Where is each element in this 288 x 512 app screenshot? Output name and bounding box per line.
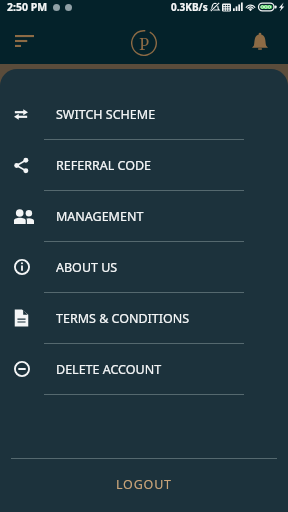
staticText: TERMS & CONDITIONS	[56, 310, 190, 327]
staticText: MANAGEMENT	[56, 208, 144, 225]
staticText: 2:50 PM	[7, 0, 48, 14]
staticText: REFERRAL CODE	[56, 157, 151, 174]
button[interactable]: Notifications	[242, 19, 278, 63]
button[interactable]: SWITCH SCHEME	[0, 89, 288, 140]
staticText: LOGOUT	[116, 476, 172, 493]
button[interactable]: ABOUT US	[0, 242, 288, 293]
staticText: ABOUT US	[56, 259, 118, 276]
staticText: SWITCH SCHEME	[56, 106, 156, 123]
button[interactable]: LOGOUT	[0, 459, 288, 512]
button[interactable]: DELETE ACCOUNT	[0, 344, 288, 395]
staticText: DELETE ACCOUNT	[56, 361, 162, 378]
staticText: 0.3KB/s	[171, 0, 208, 14]
button[interactable]: Menu	[4, 19, 44, 63]
button[interactable]: TERMS & CONDITIONS	[0, 293, 288, 344]
staticText: P	[139, 32, 150, 55]
button[interactable]: REFERRAL CODE	[0, 140, 288, 191]
button[interactable]: MANAGEMENT	[0, 191, 288, 242]
